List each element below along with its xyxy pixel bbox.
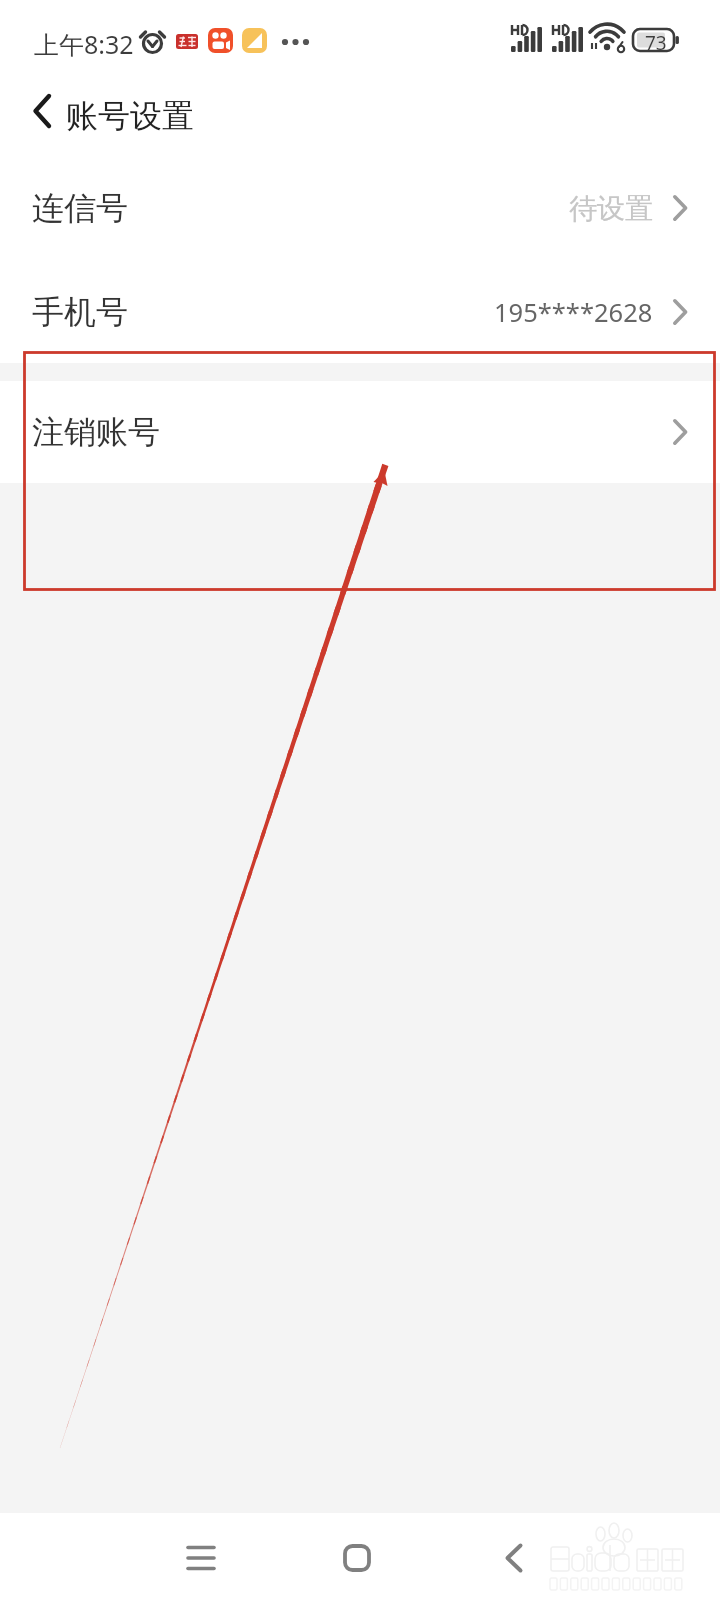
- staticText: 待设置: [569, 191, 653, 226]
- staticText: 手机号: [32, 292, 128, 332]
- button[interactable]: 手机号: [0, 260, 720, 364]
- staticText: 连信号: [32, 188, 128, 228]
- button[interactable]: 返回: [20, 90, 70, 140]
- button[interactable]: 注销账号: [0, 381, 720, 483]
- button[interactable]: 最近任务: [161, 1519, 241, 1599]
- staticText: 上午8:32: [34, 27, 134, 61]
- staticText: 195****2628: [494, 295, 653, 330]
- button[interactable]: 连信号: [0, 156, 720, 260]
- staticText: 注销账号: [32, 412, 160, 452]
- button[interactable]: 返回: [474, 1519, 554, 1599]
- staticText: 账号设置: [66, 96, 194, 136]
- staticText: 73: [645, 30, 667, 56]
- button[interactable]: 主页: [318, 1519, 398, 1599]
